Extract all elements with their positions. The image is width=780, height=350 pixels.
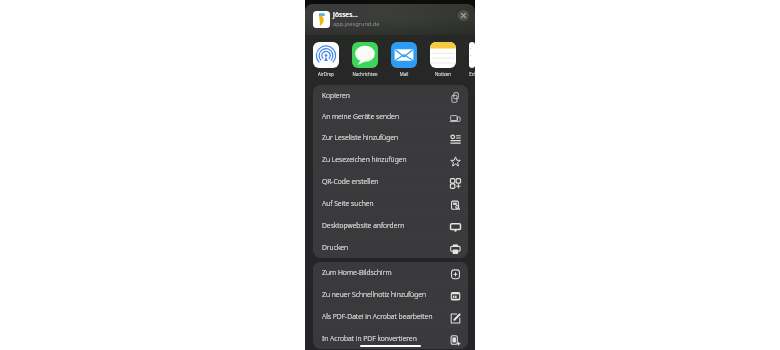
staticText: In Acrobat in PDF konvertieren [322,334,450,343]
staticText: Zur Leseliste hinzufügen [322,133,450,142]
staticText: Mail [391,71,417,77]
staticText: Notizen [430,71,456,77]
button[interactable]: Auf Seite suchen [313,192,468,214]
button[interactable]: Zu Lesezeichen hinzufügen [313,148,468,170]
button[interactable]: Mail [391,42,417,77]
button[interactable]: Erinnerungen [469,42,475,77]
staticText: QR-Code erstellen [322,177,450,186]
staticText: Jösses... [333,10,358,19]
staticText: Als PDF-Datei in Acrobat bearbeiten [322,312,450,321]
button[interactable]: Zu neuer Schnellnotiz hinzufügen [313,283,468,305]
staticText: Zu neuer Schnellnotiz hinzufügen [322,290,450,299]
button[interactable]: QR-Code erstellen [313,170,468,192]
staticText: Nachrichten [352,71,378,77]
button[interactable]: Als PDF-Datei in Acrobat bearbeiten [313,305,468,327]
button[interactable]: Close [458,10,469,21]
button[interactable]: Notizen [430,42,456,77]
button[interactable]: An meine Geräte senden [313,106,468,127]
staticText: Erinnerungen [469,71,475,77]
staticText: Drucken [322,243,450,252]
staticText: Kopieren [322,91,450,100]
staticText: Zum Home-Bildschirm [322,268,450,277]
button[interactable]: AirDrop [313,42,339,77]
staticText: Auf Seite suchen [322,199,450,208]
staticText: Zu Lesezeichen hinzufügen [322,155,450,164]
button[interactable]: In Acrobat in PDF konvertieren [313,327,468,349]
staticText: app.joesgrund.de [333,20,380,28]
button[interactable]: Desktopwebsite anfordern [313,214,468,236]
staticText: Desktopwebsite anfordern [322,221,450,230]
staticText: AirDrop [313,71,339,77]
button[interactable]: Kopieren [313,85,468,106]
button[interactable]: Drucken [313,236,468,258]
button[interactable]: Nachrichten [352,42,378,77]
button[interactable]: Zum Home-Bildschirm [313,262,468,283]
button[interactable]: Zur Leseliste hinzufügen [313,127,468,148]
staticText: An meine Geräte senden [322,112,450,121]
